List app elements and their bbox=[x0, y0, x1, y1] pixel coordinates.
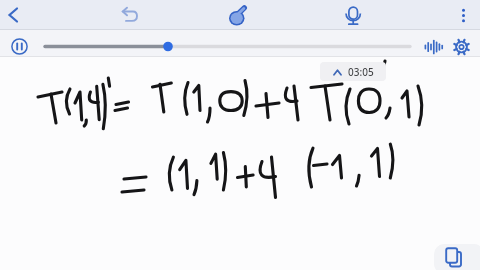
button[interactable] bbox=[434, 244, 480, 270]
button[interactable] bbox=[7, 34, 32, 59]
button[interactable] bbox=[420, 34, 447, 59]
button[interactable] bbox=[113, 0, 143, 30]
button[interactable]: 03:05 bbox=[320, 62, 386, 81]
button[interactable] bbox=[338, 1, 368, 30]
button[interactable] bbox=[40, 36, 415, 56]
button[interactable] bbox=[0, 0, 30, 30]
staticText: 03:05 bbox=[348, 65, 374, 79]
button[interactable] bbox=[223, 1, 253, 30]
button[interactable] bbox=[448, 34, 475, 59]
button[interactable] bbox=[449, 1, 478, 30]
